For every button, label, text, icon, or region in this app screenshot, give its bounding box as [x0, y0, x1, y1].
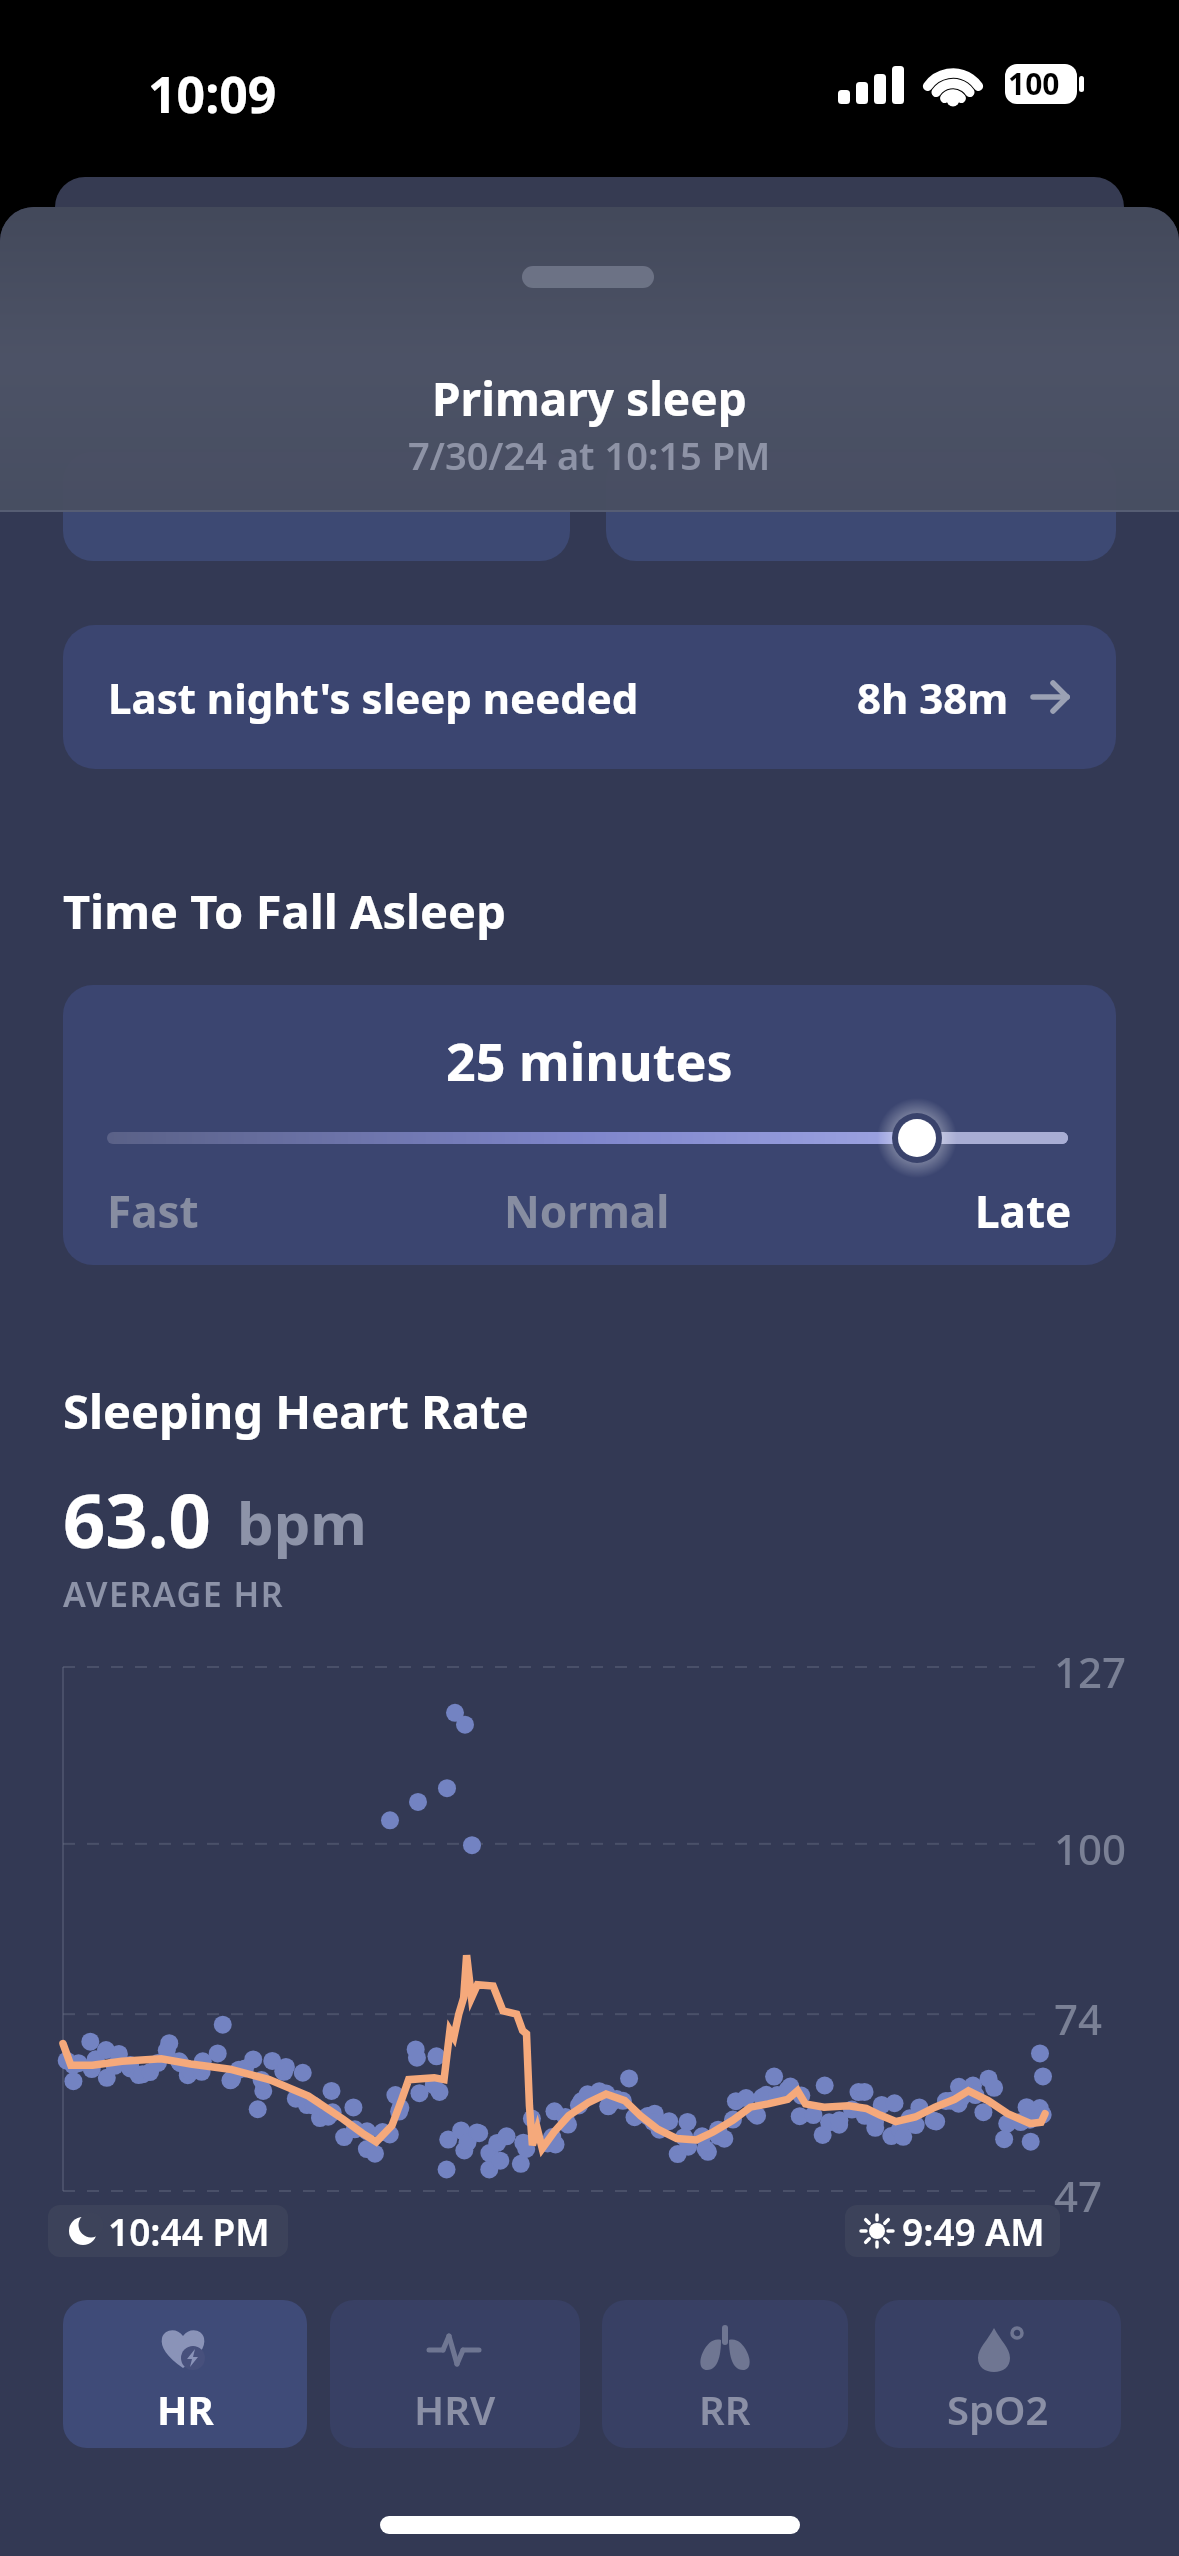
button[interactable]: SpO2 — [875, 2300, 1121, 2448]
staticText: HR — [157, 2382, 214, 2436]
staticText: 100 — [1054, 1820, 1127, 1877]
button[interactable]: 9:49 AM — [845, 2205, 1060, 2257]
staticText: 127 — [1054, 1643, 1127, 1700]
button[interactable]: Last night's sleep needed — [63, 625, 1116, 769]
staticText: 25 minutes — [446, 1025, 733, 1096]
staticText: bpm — [237, 1483, 367, 1562]
staticText: Last night's sleep needed — [108, 669, 639, 726]
staticText: 8h 38m — [857, 669, 1009, 726]
staticText: 74 — [1054, 1990, 1103, 2047]
staticText: 100 — [1008, 63, 1060, 104]
staticText: Sleeping Heart Rate — [63, 1379, 529, 1443]
staticText: 63.0 — [63, 1469, 211, 1570]
staticText: 7/30/24 at 10:15 PM — [408, 429, 771, 481]
staticText: SpO2 — [947, 2382, 1049, 2436]
staticText: Primary sleep — [432, 367, 747, 430]
button[interactable]: 10:44 PM — [48, 2205, 288, 2257]
staticText: 9:49 AM — [902, 2206, 1045, 2256]
staticText: Normal — [504, 1181, 670, 1241]
staticText: Fast — [107, 1181, 199, 1241]
staticText: HRV — [414, 2382, 496, 2436]
staticText: AVERAGE HR — [63, 1571, 285, 1617]
button[interactable]: HR — [63, 2300, 307, 2448]
staticText: Time To Fall Asleep — [63, 879, 506, 943]
button[interactable]: RR — [602, 2300, 848, 2448]
staticText: Late — [975, 1181, 1072, 1241]
staticText: 47 — [1054, 2167, 1103, 2224]
staticText: 10:09 — [148, 60, 277, 128]
button[interactable]: HRV — [330, 2300, 580, 2448]
staticText: 10:44 PM — [108, 2206, 270, 2256]
staticText: RR — [699, 2382, 751, 2436]
